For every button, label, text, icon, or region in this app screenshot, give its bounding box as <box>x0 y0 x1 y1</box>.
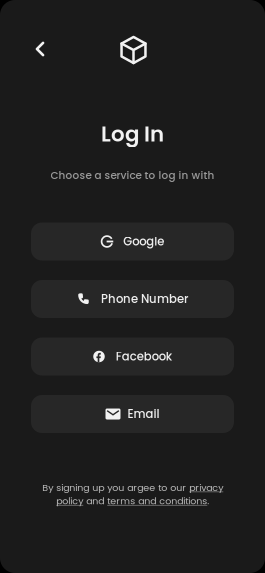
staticText: Log In <box>101 119 164 149</box>
staticText: Phone Number <box>101 291 188 307</box>
button[interactable]: Email <box>31 395 234 433</box>
button[interactable]: Back <box>31 34 61 64</box>
staticText: Email <box>127 406 159 422</box>
staticText: By signing up you argee to our privacy p… <box>42 481 223 507</box>
staticText: Choose a service to log in with <box>50 168 214 183</box>
button[interactable]: Google <box>31 222 234 260</box>
button[interactable]: Facebook <box>31 337 234 375</box>
staticText: Facebook <box>116 348 172 365</box>
button[interactable]: Phone Number <box>31 280 234 318</box>
staticText: Google <box>123 233 164 250</box>
